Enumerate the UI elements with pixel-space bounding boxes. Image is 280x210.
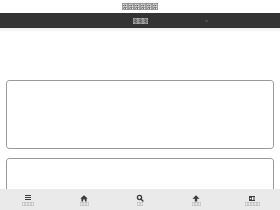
button[interactable]: Wallet <box>224 189 280 210</box>
button[interactable]: Search <box>112 189 168 210</box>
button[interactable] <box>6 80 274 149</box>
button[interactable]: More options <box>203 17 210 24</box>
button[interactable]: Home <box>56 189 112 210</box>
button[interactable]: Upload <box>168 189 224 210</box>
button[interactable] <box>6 158 274 189</box>
button[interactable]: List <box>0 189 56 210</box>
